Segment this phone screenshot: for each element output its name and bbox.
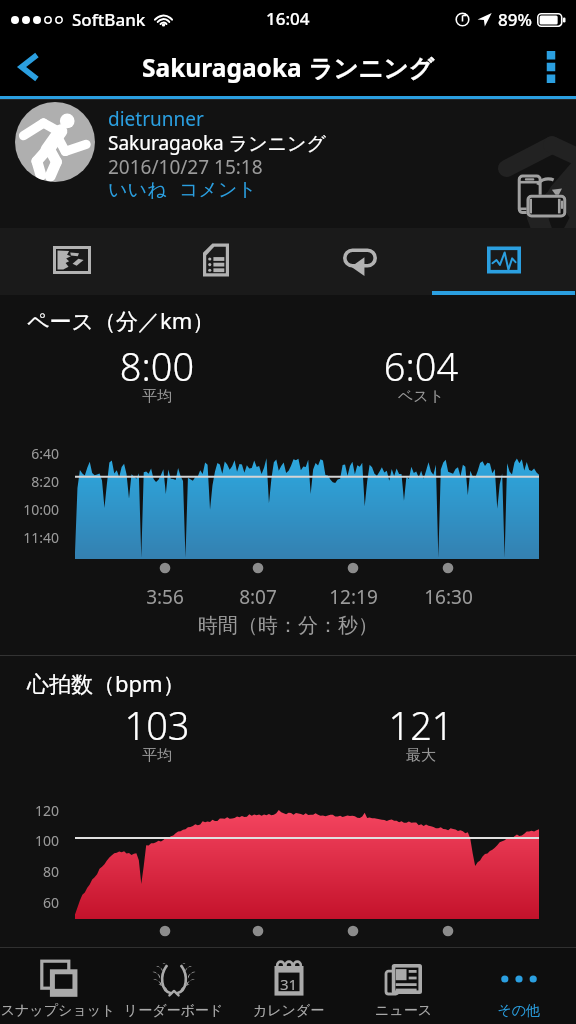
staticText: 120	[34, 801, 59, 820]
staticText: コメント	[179, 178, 257, 202]
button[interactable]: Splits	[288, 228, 432, 295]
staticText: Sakuragaoka ランニング	[108, 130, 326, 156]
staticText: 16:30	[424, 584, 473, 604]
staticText: 16:04	[266, 7, 310, 30]
staticText: 100	[34, 831, 59, 850]
staticText: ベスト	[331, 387, 511, 406]
staticText: スナップショット	[0, 1002, 116, 1020]
staticText: 6:04	[331, 340, 511, 392]
button[interactable]: More options	[526, 38, 576, 96]
button[interactable]: その他	[461, 948, 576, 1024]
staticText: 60	[42, 893, 59, 912]
staticText: ニュース	[346, 1002, 461, 1020]
staticText: 12:19	[329, 584, 378, 604]
button[interactable]: リーダーボード	[116, 948, 231, 1024]
button[interactable]: いいね	[108, 178, 167, 202]
staticText: 103	[67, 699, 247, 751]
button[interactable]: Activity details	[144, 228, 288, 295]
button[interactable]: Rotate device	[519, 176, 565, 216]
staticText: 最大	[331, 746, 511, 765]
staticText: カレンダー	[231, 1002, 346, 1020]
button[interactable]: Back	[0, 38, 58, 96]
staticText: 8:00	[67, 340, 247, 392]
staticText: 心拍数（bpm）	[27, 668, 185, 698]
staticText: Sakuragaoka ランニング	[142, 51, 434, 84]
staticText: 2016/10/27 15:18	[108, 154, 263, 180]
staticText: SoftBank	[72, 8, 146, 31]
staticText: 8:07	[239, 584, 277, 604]
button[interactable]: コメント	[179, 178, 257, 202]
staticText: いいね	[108, 178, 167, 202]
staticText: 89%	[498, 8, 532, 31]
staticText: 3:56	[146, 584, 184, 604]
staticText: 6:40	[31, 444, 59, 463]
button[interactable]: 31	[231, 948, 346, 1024]
staticText: ペース（分／km）	[27, 305, 215, 335]
staticText: 80	[42, 862, 59, 881]
staticText: 8:20	[31, 472, 59, 491]
staticText: リーダーボード	[116, 1002, 231, 1020]
staticText: 平均	[67, 387, 247, 406]
staticText: 121	[331, 699, 511, 751]
staticText: 時間（時：分：秒）	[198, 613, 378, 638]
staticText: dietrunner	[108, 106, 204, 132]
button[interactable]: スナップショット	[0, 948, 116, 1024]
staticText: 11:40	[23, 528, 59, 547]
button[interactable]: Map	[0, 228, 144, 295]
staticText: 10:00	[23, 500, 59, 519]
button[interactable]: ニュース	[346, 948, 461, 1024]
button[interactable]: Charts	[432, 228, 576, 295]
staticText: 31	[231, 974, 346, 994]
staticText: 平均	[67, 746, 247, 765]
staticText: その他	[461, 1002, 576, 1020]
